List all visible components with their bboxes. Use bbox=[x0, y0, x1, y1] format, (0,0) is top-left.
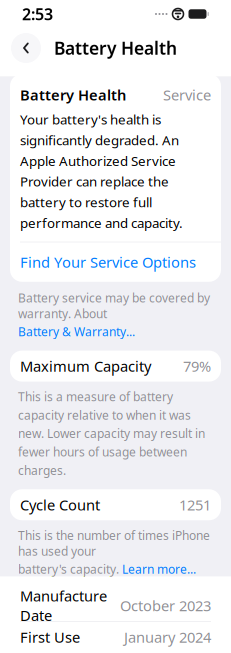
staticText: Battery Health bbox=[20, 85, 126, 104]
staticText: battery's capacity. bbox=[18, 561, 119, 577]
staticText: Service bbox=[163, 85, 211, 104]
staticText: Battery service may be covered by warran… bbox=[18, 290, 210, 322]
staticText: Learn more... bbox=[122, 561, 196, 577]
staticText: Find Your Service Options bbox=[20, 252, 196, 272]
staticText: First Use bbox=[20, 627, 80, 647]
button[interactable]: Maximum Capacity bbox=[10, 351, 221, 382]
button[interactable]: Battery & Warranty... bbox=[18, 324, 135, 340]
staticText: October 2023 bbox=[120, 596, 211, 615]
button[interactable]: Cycle Count bbox=[10, 489, 221, 520]
staticText: Maximum Capacity bbox=[20, 356, 151, 376]
staticText: This is the number of times iPhone has u… bbox=[18, 527, 210, 559]
staticText: Your battery's health is significantly d… bbox=[20, 110, 183, 232]
staticText: Cycle Count bbox=[20, 495, 100, 514]
staticText: 79% bbox=[183, 356, 211, 376]
button[interactable]: Find Your Service Options bbox=[10, 242, 221, 282]
staticText: This is a measure of battery capacity re… bbox=[18, 389, 205, 478]
staticText: 1251 bbox=[179, 495, 211, 514]
button[interactable]: Learn more... bbox=[122, 561, 196, 577]
staticText: Manufacture Date bbox=[20, 586, 107, 625]
staticText: Battery & Warranty... bbox=[18, 324, 135, 340]
button[interactable]: Back bbox=[11, 33, 41, 63]
staticText: January 2024 bbox=[124, 627, 211, 647]
